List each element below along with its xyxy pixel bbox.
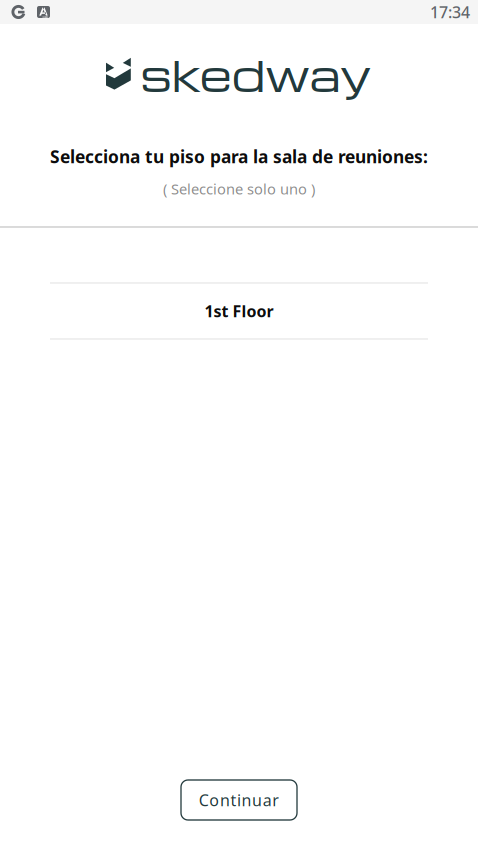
staticText: Selecciona tu piso para la sala de reuni…: [50, 145, 428, 168]
staticText: 1st Floor: [204, 300, 273, 322]
button[interactable]: 1st Floor: [50, 282, 428, 339]
staticText: skedway: [140, 44, 372, 103]
staticText: Continuar: [199, 789, 279, 811]
staticText: 17:34: [430, 1, 470, 23]
staticText: ( Seleccione solo uno ): [163, 179, 315, 198]
button[interactable]: Continuar: [181, 780, 297, 820]
